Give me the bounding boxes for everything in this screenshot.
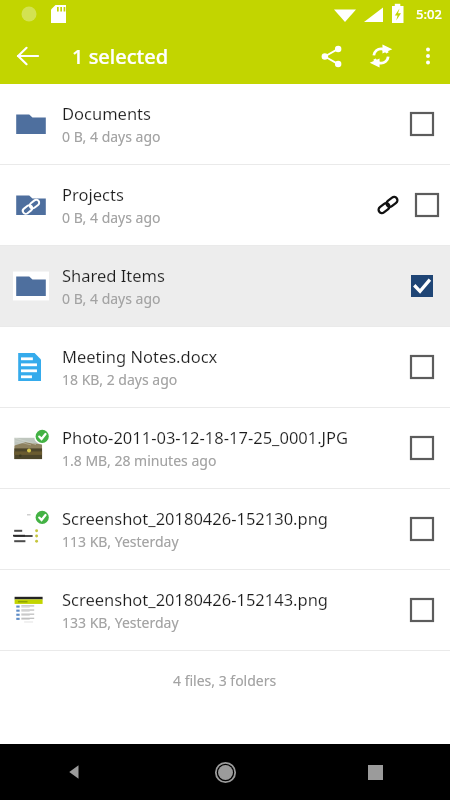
staticText: 4 files, 3 folders — [173, 671, 277, 690]
button[interactable]: Photo-2011-03-12-18-17-25_0001.JPG — [0, 408, 450, 488]
staticText: 0 B, 4 days ago — [62, 208, 161, 227]
button[interactable]: Deselect Shared Items — [394, 246, 450, 326]
staticText: 113 KB, Yesterday — [62, 532, 179, 551]
staticText: 5:02 — [416, 5, 442, 23]
button[interactable]: Documents — [0, 84, 450, 164]
button[interactable]: Select Screenshot_20180426-152130.png — [394, 489, 450, 569]
button[interactable]: More options — [406, 34, 450, 78]
button[interactable]: Shared Items — [0, 246, 450, 326]
button[interactable]: Select Meeting Notes.docx — [394, 327, 450, 407]
staticText: 0 B, 4 days ago — [62, 127, 161, 146]
staticText: Screenshot_20180426-152143.png — [62, 588, 328, 610]
staticText: 1 selected — [72, 43, 306, 70]
button[interactable]: Home — [150, 744, 300, 800]
button[interactable]: Select Screenshot_20180426-152143.png — [394, 570, 450, 650]
button[interactable]: Select Projects — [404, 165, 450, 245]
button[interactable]: Select Documents — [394, 84, 450, 164]
staticText: 0 B, 4 days ago — [62, 289, 161, 308]
button[interactable]: Select Photo-2011-03-12-18-17-25_0001.JP… — [394, 408, 450, 488]
button[interactable]: Screenshot_20180426-152143.png — [0, 570, 450, 650]
staticText: 1.8 MB, 28 minutes ago — [62, 451, 217, 470]
staticText: 133 KB, Yesterday — [62, 613, 179, 632]
button[interactable]: Share — [306, 31, 356, 81]
staticText: Meeting Notes.docx — [62, 345, 218, 367]
button[interactable]: Projects — [0, 165, 450, 245]
button[interactable]: Refresh — [356, 31, 406, 81]
button[interactable]: Recent apps — [300, 744, 450, 800]
button[interactable]: Screenshot_20180426-152130.png — [0, 489, 450, 569]
button[interactable]: Back — [0, 28, 56, 84]
staticText: Projects — [62, 183, 124, 205]
button[interactable]: Back — [0, 744, 150, 800]
button[interactable]: Meeting Notes.docx — [0, 327, 450, 407]
staticText: 18 KB, 2 days ago — [62, 370, 178, 389]
staticText: Screenshot_20180426-152130.png — [62, 507, 328, 529]
staticText: Photo-2011-03-12-18-17-25_0001.JPG — [62, 426, 349, 448]
staticText: Documents — [62, 102, 151, 124]
staticText: Shared Items — [62, 264, 165, 286]
